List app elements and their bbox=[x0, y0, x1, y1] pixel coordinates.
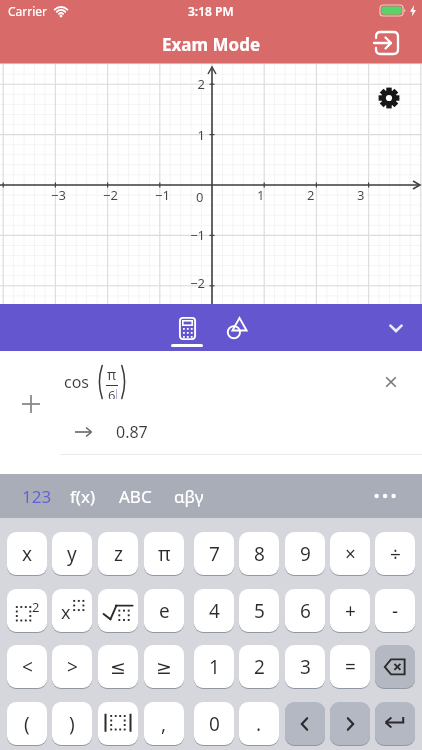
button[interactable] bbox=[375, 645, 415, 688]
button[interactable]: . bbox=[239, 702, 279, 745]
button[interactable]: ≤ bbox=[98, 645, 138, 688]
button[interactable]: z bbox=[98, 532, 138, 575]
staticText: < bbox=[22, 654, 33, 680]
button[interactable] bbox=[372, 486, 402, 506]
staticText: f(x) bbox=[70, 485, 96, 508]
button[interactable]: ) bbox=[52, 702, 92, 745]
staticText: 4 bbox=[209, 598, 220, 624]
button[interactable] bbox=[98, 702, 138, 745]
button[interactable]: cos bbox=[64, 365, 128, 399]
staticText: z bbox=[114, 541, 123, 567]
button[interactable]: 6 bbox=[285, 589, 325, 632]
button[interactable] bbox=[218, 304, 258, 351]
staticText: y bbox=[67, 541, 77, 567]
staticText: 3 bbox=[357, 186, 365, 204]
staticText: 2 bbox=[254, 654, 265, 680]
staticText: αβγ bbox=[174, 485, 204, 508]
staticText: 1 bbox=[175, 126, 205, 144]
staticText: 2 bbox=[175, 75, 205, 93]
staticText: 1 bbox=[257, 186, 265, 204]
button[interactable]: y bbox=[52, 532, 92, 575]
staticText: × bbox=[345, 541, 356, 567]
staticText: −2 bbox=[103, 186, 118, 204]
staticText: 3 bbox=[300, 654, 311, 680]
staticText: , bbox=[161, 711, 167, 737]
staticText: ABC bbox=[119, 485, 152, 508]
staticText: ( bbox=[24, 711, 30, 737]
button[interactable] bbox=[20, 393, 42, 415]
button[interactable] bbox=[98, 589, 138, 632]
button[interactable] bbox=[371, 27, 403, 59]
staticText: 1 bbox=[209, 654, 220, 680]
button[interactable]: π bbox=[144, 532, 184, 575]
button[interactable]: ÷ bbox=[375, 532, 415, 575]
button[interactable]: 4 bbox=[194, 589, 234, 632]
button[interactable]: ABC bbox=[117, 474, 154, 518]
staticText: 0 bbox=[196, 188, 204, 206]
staticText: 123 bbox=[22, 485, 52, 508]
button[interactable]: 1 bbox=[194, 645, 234, 688]
staticText: 0.87 bbox=[116, 421, 148, 443]
staticText: cos bbox=[64, 371, 90, 393]
button[interactable]: 0 bbox=[194, 702, 234, 745]
button[interactable]: f(x) bbox=[68, 474, 98, 518]
staticText: Exam Mode bbox=[162, 33, 261, 56]
staticText: 6 bbox=[108, 386, 116, 399]
button[interactable]: - bbox=[375, 589, 415, 632]
button[interactable] bbox=[376, 85, 402, 111]
button[interactable] bbox=[285, 702, 325, 745]
staticText: = bbox=[345, 654, 356, 680]
staticText: 9 bbox=[300, 541, 311, 567]
staticText: 6 bbox=[300, 598, 311, 624]
button[interactable]: 3 bbox=[285, 645, 325, 688]
button[interactable]: 2 bbox=[7, 589, 47, 632]
button[interactable] bbox=[382, 314, 410, 342]
button[interactable]: x bbox=[52, 589, 92, 632]
button[interactable]: > bbox=[52, 645, 92, 688]
staticText: 2 bbox=[307, 186, 315, 204]
button[interactable]: ( bbox=[7, 702, 47, 745]
button[interactable] bbox=[379, 370, 403, 394]
button[interactable] bbox=[375, 702, 415, 745]
staticText: ≤ bbox=[110, 656, 126, 678]
button[interactable]: , bbox=[144, 702, 184, 745]
staticText: . bbox=[256, 711, 262, 737]
staticText: x bbox=[61, 600, 71, 624]
button[interactable]: < bbox=[7, 645, 47, 688]
button[interactable]: 7 bbox=[194, 532, 234, 575]
button[interactable]: + bbox=[330, 589, 370, 632]
staticText: - bbox=[392, 598, 399, 624]
button[interactable]: −3 bbox=[0, 64, 422, 304]
button[interactable]: = bbox=[330, 645, 370, 688]
staticText: 2 bbox=[32, 598, 40, 616]
staticText: e bbox=[159, 598, 170, 624]
button[interactable]: 123 bbox=[20, 474, 54, 518]
staticText: 0 bbox=[209, 711, 220, 737]
button[interactable] bbox=[164, 304, 210, 351]
staticText: > bbox=[67, 654, 78, 680]
staticText: 5 bbox=[254, 598, 265, 624]
staticText: −2 bbox=[175, 274, 205, 292]
button[interactable]: × bbox=[330, 532, 370, 575]
staticText: Carrier bbox=[8, 3, 48, 19]
button[interactable]: 8 bbox=[239, 532, 279, 575]
staticText: + bbox=[345, 598, 356, 624]
button[interactable]: x bbox=[7, 532, 47, 575]
button[interactable]: 5 bbox=[239, 589, 279, 632]
staticText: 8 bbox=[254, 541, 265, 567]
button[interactable]: e bbox=[144, 589, 184, 632]
staticText: −3 bbox=[51, 186, 66, 204]
staticText: ≥ bbox=[156, 656, 172, 678]
button[interactable]: 2 bbox=[239, 645, 279, 688]
staticText: x bbox=[22, 541, 33, 567]
staticText: 3:18 PM bbox=[188, 3, 234, 19]
staticText: ) bbox=[69, 711, 75, 737]
button[interactable] bbox=[330, 702, 370, 745]
staticText: π bbox=[158, 541, 171, 567]
staticText: π bbox=[107, 365, 117, 384]
button[interactable]: αβγ bbox=[172, 474, 206, 518]
staticText: ÷ bbox=[390, 541, 401, 567]
button[interactable]: 9 bbox=[285, 532, 325, 575]
button[interactable]: ≥ bbox=[144, 645, 184, 688]
button[interactable]: 0.87 bbox=[74, 421, 148, 443]
